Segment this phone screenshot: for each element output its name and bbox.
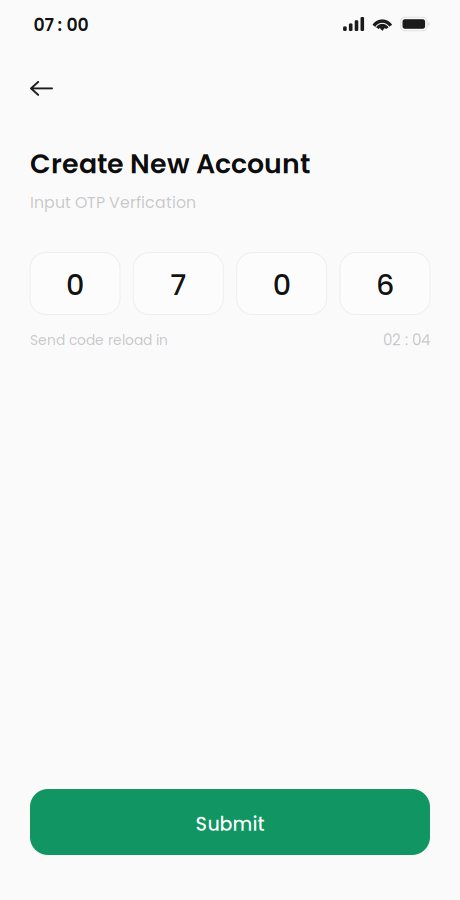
staticText: Create New Account xyxy=(30,145,310,182)
staticText: Send code reload in xyxy=(30,330,168,350)
staticText: 02 : 04 xyxy=(383,329,430,351)
button[interactable]: 0 xyxy=(30,252,120,314)
button[interactable]: 02 : 04 xyxy=(383,329,430,351)
staticText: 7 xyxy=(170,265,186,305)
button[interactable]: 6 xyxy=(340,252,430,314)
button[interactable]: Back xyxy=(30,66,74,110)
staticText: 6 xyxy=(376,265,394,305)
staticText: Input OTP Verfication xyxy=(30,191,196,213)
button[interactable]: 0 xyxy=(237,252,327,314)
staticText: Submit xyxy=(195,811,264,837)
staticText: 0 xyxy=(66,265,84,305)
staticText: 0 xyxy=(273,265,291,305)
staticText: 07 : 00 xyxy=(33,13,88,37)
button[interactable]: 7 xyxy=(133,252,223,314)
button[interactable]: Submit xyxy=(30,789,430,855)
